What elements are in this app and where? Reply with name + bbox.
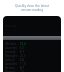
- button[interactable]: Wireless: [3, 42, 61, 46]
- staticText: Gallery: [5, 58, 15, 62]
- staticText: Quickly clear the latest: [15, 4, 49, 8]
- button[interactable]: Backup: [3, 66, 61, 70]
- staticText: 3.4: [20, 58, 24, 62]
- staticText: Launcher: [5, 46, 18, 50]
- staticText: Settings: [5, 24, 17, 28]
- staticText: Backup: [5, 66, 15, 70]
- staticText: 12.4: [20, 42, 26, 46]
- button[interactable]: Assistant: [3, 62, 61, 66]
- staticText: Wireless: [5, 42, 16, 46]
- button[interactable]: Launcher: [3, 46, 61, 50]
- button[interactable]: Manager: [3, 54, 61, 58]
- staticText: 5.1: [20, 50, 24, 54]
- staticText: version reading: [21, 8, 43, 12]
- staticText: 8.2: [20, 46, 24, 50]
- button[interactable]: Gallery: [3, 58, 61, 62]
- staticText: Themes: [5, 70, 16, 72]
- button[interactable]: Security: [3, 50, 61, 54]
- staticText: Assistant: [5, 62, 17, 66]
- button[interactable]: Themes: [3, 70, 61, 72]
- staticText: Security: [5, 50, 16, 54]
- staticText: Manager: [5, 54, 17, 58]
- staticText: 6.7: [20, 66, 24, 70]
- staticText: 24.6: [20, 54, 26, 58]
- staticText: 2.9: [20, 70, 24, 72]
- staticText: 11.8: [20, 62, 26, 66]
